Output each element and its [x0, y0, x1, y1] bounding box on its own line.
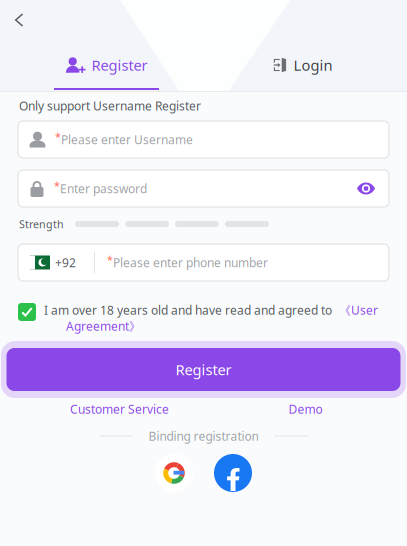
staticText: Strength	[19, 217, 64, 231]
button[interactable]: Login	[203, 46, 407, 90]
staticText: Register	[175, 360, 231, 379]
button[interactable]: Sign up with Google	[155, 454, 193, 492]
staticText: *	[54, 178, 60, 193]
staticText: +92	[55, 254, 76, 270]
button[interactable]: I am over 18 years old	[18, 303, 36, 321]
staticText: Please enter Username	[61, 131, 193, 147]
button[interactable]: Customer Service	[26, 399, 212, 419]
staticText: Customer Service	[70, 401, 169, 417]
staticText: Agreement》	[66, 318, 141, 334]
button[interactable]: Agreement》	[66, 319, 146, 333]
staticText: Enter password	[60, 180, 147, 196]
staticText: Binding registration	[148, 428, 258, 444]
button[interactable]: Show password	[349, 173, 383, 203]
button[interactable]: Demo	[212, 399, 398, 419]
staticText: 《User	[339, 302, 378, 318]
button[interactable]: Sign up with Facebook	[214, 454, 252, 492]
staticText: Login	[293, 55, 332, 75]
button[interactable]: 《User	[339, 303, 385, 317]
staticText: I am over 18 years old and have read and…	[44, 302, 332, 318]
staticText: Please enter phone number	[113, 254, 268, 270]
staticText: *	[55, 129, 61, 144]
button[interactable]: Register	[0, 341, 407, 398]
staticText: *	[107, 252, 113, 267]
button[interactable]: Back	[2, 5, 36, 35]
staticText: Demo	[288, 401, 322, 417]
staticText: Only support Username Register	[19, 98, 201, 114]
staticText: Register	[91, 55, 147, 75]
button[interactable]: Register	[0, 46, 203, 90]
